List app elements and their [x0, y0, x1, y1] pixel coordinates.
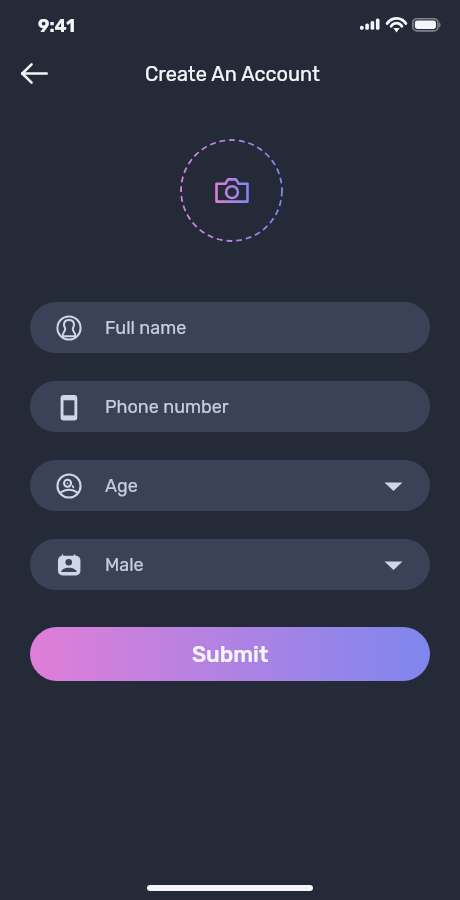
button[interactable]: Back	[11, 50, 58, 97]
staticText: 9:41	[38, 15, 76, 36]
button[interactable]: Submit	[30, 627, 430, 681]
staticText: Age	[105, 475, 138, 496]
button[interactable]: Full name	[30, 302, 430, 353]
button[interactable]: Add profile photo	[180, 139, 283, 242]
staticText: Male	[105, 554, 144, 575]
button[interactable]: Age	[30, 460, 430, 511]
staticText: Phone number	[105, 396, 229, 417]
button[interactable]: Phone number	[30, 381, 430, 432]
staticText: Submit	[192, 641, 269, 667]
staticText: Create An Account	[145, 62, 320, 86]
staticText: Full name	[105, 317, 187, 338]
button[interactable]: Male	[30, 539, 430, 590]
